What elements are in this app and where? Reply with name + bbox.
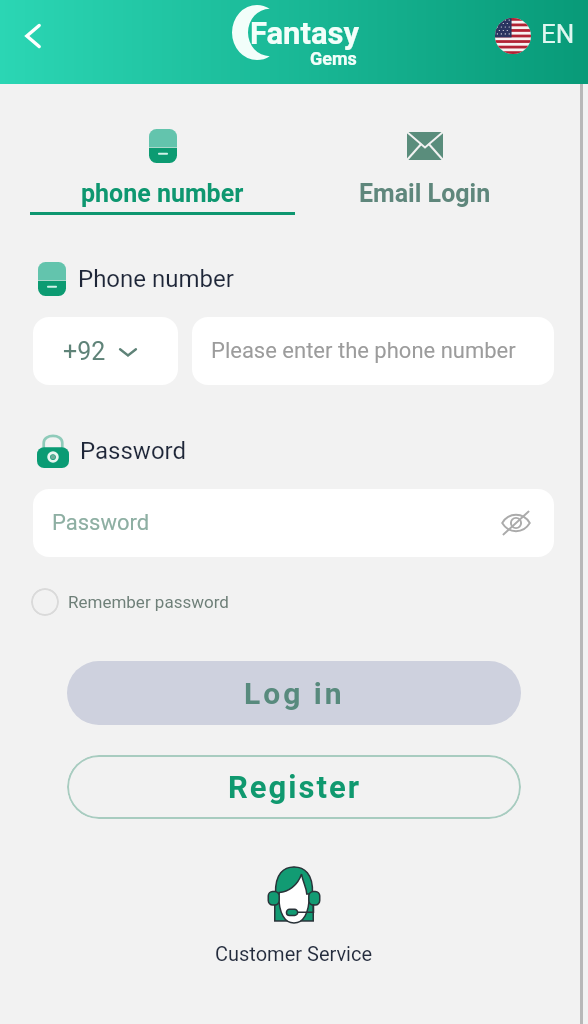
button[interactable]: Back — [11, 14, 55, 58]
staticText: Password — [52, 510, 150, 536]
button[interactable]: Email Login — [300, 110, 550, 215]
button[interactable]: Log in — [67, 661, 521, 725]
staticText: Customer Service — [215, 942, 373, 965]
button[interactable]: phone number — [30, 110, 295, 218]
button[interactable]: Please enter the phone number — [192, 317, 554, 385]
button[interactable]: EN — [495, 10, 575, 62]
staticText: Remember password — [68, 592, 229, 612]
staticText: Please enter the phone number — [211, 338, 516, 364]
staticText: Gems — [310, 48, 357, 69]
staticText: phone number — [81, 179, 244, 208]
button[interactable]: Customer Service — [0, 865, 588, 965]
staticText: Log in — [244, 676, 345, 711]
staticText: Phone number — [78, 265, 234, 293]
staticText: EN — [541, 19, 575, 49]
staticText: Register — [228, 769, 361, 805]
staticText: Fantasy — [250, 15, 360, 51]
staticText: +92 — [63, 337, 106, 366]
button[interactable]: Password — [33, 489, 554, 557]
button[interactable]: Register — [67, 755, 521, 819]
staticText: Password — [80, 437, 187, 465]
button[interactable]: +92 — [33, 317, 178, 385]
staticText: Email Login — [359, 179, 491, 208]
button[interactable]: Show password — [496, 503, 536, 543]
button[interactable]: Remember password — [31, 588, 229, 616]
